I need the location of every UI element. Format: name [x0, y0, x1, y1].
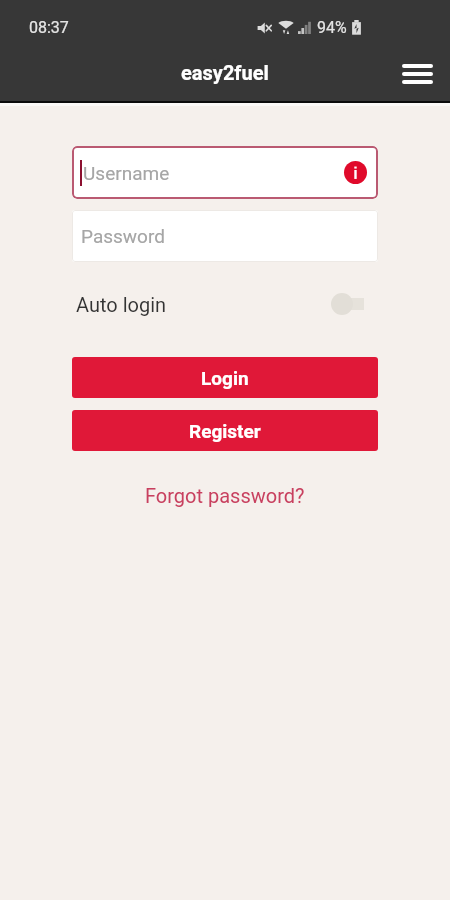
staticText: 94%: [317, 18, 347, 37]
other: Error: [344, 161, 367, 184]
staticText: Login: [201, 367, 249, 389]
other: Signal strength: [298, 21, 311, 34]
button[interactable]: Menu: [395, 52, 439, 96]
other: Sound muted: [257, 20, 272, 35]
other: Auto login toggle: [331, 293, 364, 315]
button[interactable]: Forgot password?: [135, 479, 315, 512]
staticText: Username: [83, 162, 170, 184]
staticText: 08:37: [29, 18, 69, 37]
staticText: Register: [189, 420, 261, 442]
button[interactable]: Auto login: [76, 289, 364, 319]
button[interactable]: Register: [72, 410, 378, 451]
staticText: easy2fuel: [181, 61, 269, 84]
button[interactable]: Password: [72, 210, 378, 262]
staticText: Auto login: [76, 293, 167, 316]
other: Wi-Fi: [278, 20, 294, 35]
button[interactable]: Username: [72, 146, 378, 199]
button[interactable]: Login: [72, 357, 378, 398]
staticText: Password: [81, 225, 165, 247]
